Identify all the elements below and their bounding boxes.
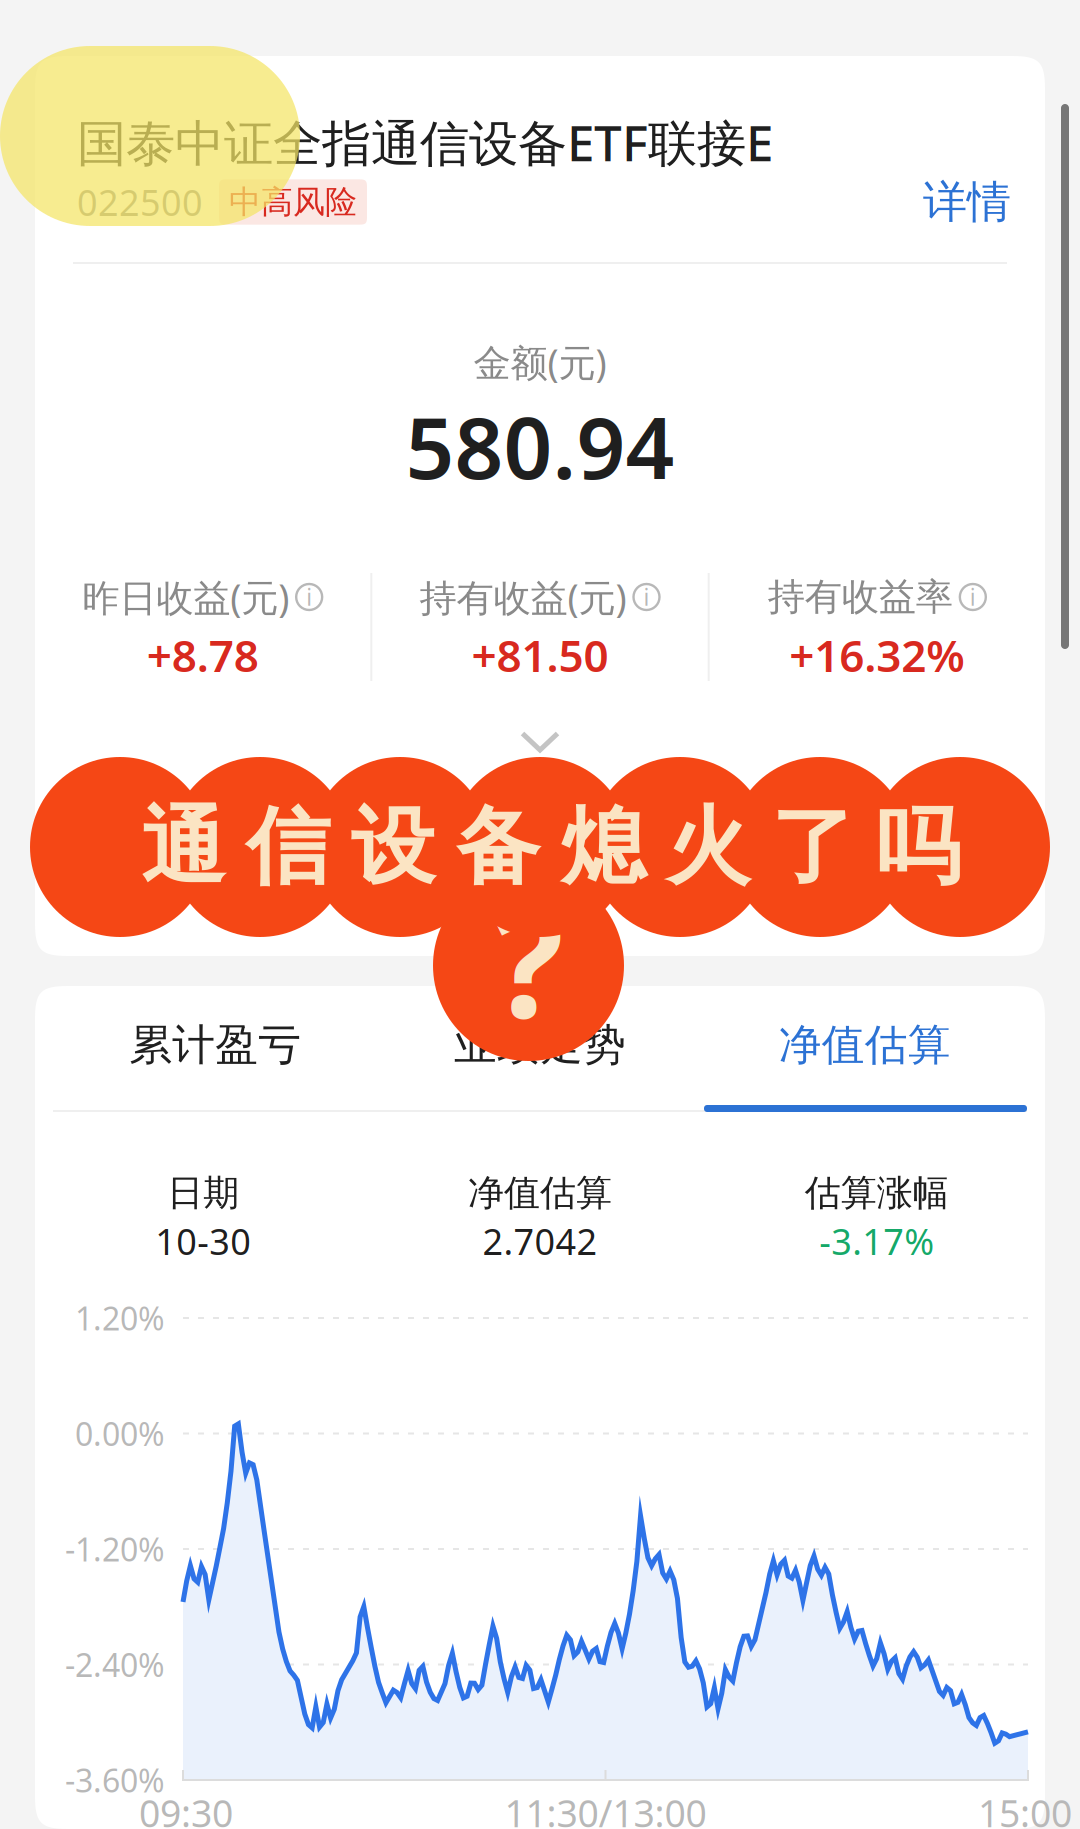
staticText: 昨日收益(元) xyxy=(82,572,289,622)
staticText: 详情 xyxy=(923,175,1011,229)
staticText: ? xyxy=(493,863,563,1058)
staticText: 净值估算 xyxy=(779,1019,951,1071)
staticText: 1.20% xyxy=(75,1297,165,1339)
staticText: -1.20% xyxy=(65,1528,165,1570)
staticText: 0.00% xyxy=(75,1412,165,1455)
staticText: 15:00 xyxy=(978,1788,1072,1829)
staticText: 业绩走势 xyxy=(454,1019,626,1071)
staticText: 580.94 xyxy=(405,389,674,503)
button[interactable]: 净值估算 xyxy=(702,1019,1027,1071)
staticText: 累计盈亏 xyxy=(129,1019,301,1071)
staticText: i xyxy=(306,582,312,612)
staticText: +16.32% xyxy=(789,626,965,684)
staticText: 净值估算 xyxy=(468,1171,612,1215)
staticText: i xyxy=(643,582,649,612)
staticText: +8.78 xyxy=(147,626,259,684)
staticText: 金额(元) xyxy=(473,337,606,387)
staticText: 持有收益(元) xyxy=(419,572,626,622)
staticText: 估算涨幅 xyxy=(805,1171,949,1215)
button[interactable]: 业绩走势 xyxy=(378,1019,702,1071)
staticText: -3.60% xyxy=(65,1759,165,1801)
staticText: 10-30 xyxy=(155,1217,251,1265)
staticText: 022500 xyxy=(77,178,203,226)
staticText: 中高风险 xyxy=(229,182,357,222)
button[interactable]: 详情 xyxy=(923,175,1011,229)
staticText: 国泰中证全指通信设备ETF联接E xyxy=(77,109,773,175)
staticText: 2.7042 xyxy=(482,1217,597,1265)
staticText: 11:30/13:00 xyxy=(504,1788,706,1829)
staticText: 日期 xyxy=(167,1171,239,1215)
button[interactable]: 累计盈亏 xyxy=(53,1019,378,1071)
staticText: -2.40% xyxy=(65,1643,165,1686)
staticText: -3.17% xyxy=(819,1217,934,1265)
staticText: 09:30 xyxy=(139,1788,233,1829)
staticText: +81.50 xyxy=(471,626,608,684)
staticText: 持有收益率 xyxy=(768,574,953,620)
staticText: 通信设备熄火了吗 xyxy=(141,795,960,899)
staticText: i xyxy=(970,582,976,612)
